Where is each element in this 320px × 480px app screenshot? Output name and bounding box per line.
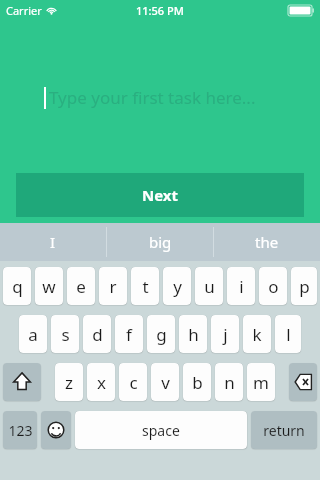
staticText: big — [149, 232, 172, 252]
button[interactable]: w — [35, 267, 63, 305]
button[interactable]: o — [259, 267, 287, 305]
button[interactable]: q — [3, 267, 31, 305]
button[interactable]: n — [215, 363, 243, 401]
staticText: q — [12, 275, 23, 298]
button[interactable]: g — [147, 315, 175, 353]
staticText: d — [92, 323, 103, 346]
button[interactable]: r — [99, 267, 127, 305]
staticText: c — [129, 371, 138, 394]
button[interactable]: t — [131, 267, 159, 305]
staticText: y — [173, 275, 182, 298]
staticText: t — [142, 275, 149, 298]
staticText: b — [192, 371, 203, 394]
staticText: space — [142, 421, 180, 440]
button[interactable]: m — [247, 363, 275, 401]
staticText: e — [76, 275, 86, 298]
staticText: Next — [142, 185, 179, 205]
staticText: return — [263, 421, 305, 440]
staticText: p — [299, 275, 310, 298]
button[interactable]: f — [115, 315, 143, 353]
button[interactable]: Type your first task here... — [44, 86, 256, 109]
staticText: w — [42, 275, 56, 298]
staticText: Carrier — [6, 3, 42, 18]
button[interactable]: p — [291, 267, 317, 305]
button[interactable]: Next — [16, 173, 304, 217]
staticText: 11:56 PM — [136, 3, 184, 18]
button[interactable]: I — [0, 223, 106, 261]
staticText: x — [97, 371, 106, 394]
button[interactable]: b — [183, 363, 211, 401]
staticText: I — [50, 232, 56, 252]
button[interactable]: k — [243, 315, 271, 353]
staticText: h — [188, 323, 199, 346]
button[interactable]: v — [151, 363, 179, 401]
button[interactable]: 123 — [3, 411, 37, 449]
staticText: o — [268, 275, 279, 298]
staticText: u — [204, 275, 215, 298]
staticText: l — [286, 323, 291, 346]
staticText: z — [65, 371, 73, 394]
staticText: v — [161, 371, 170, 394]
button[interactable]: s — [51, 315, 79, 353]
staticText: f — [126, 323, 132, 346]
staticText: r — [109, 275, 117, 298]
button[interactable]: d — [83, 315, 111, 353]
button[interactable]: return — [251, 411, 317, 449]
staticText: the — [255, 232, 279, 252]
button[interactable]: h — [179, 315, 207, 353]
button[interactable]: space — [75, 411, 247, 449]
button[interactable]: j — [211, 315, 239, 353]
staticText: k — [252, 323, 262, 346]
button[interactable]: y — [163, 267, 191, 305]
button[interactable]: the — [214, 223, 320, 261]
button[interactable]: big — [107, 223, 213, 261]
staticText: g — [156, 323, 167, 346]
staticText: s — [61, 323, 70, 346]
button[interactable]: e — [67, 267, 95, 305]
button[interactable]: i — [227, 267, 255, 305]
button[interactable]: l — [275, 315, 301, 353]
staticText: a — [28, 323, 38, 346]
staticText: j — [223, 323, 228, 346]
button[interactable]: x — [87, 363, 115, 401]
button[interactable]: Emoji — [41, 411, 71, 449]
staticText: i — [239, 275, 244, 298]
staticText: m — [253, 371, 269, 394]
button[interactable]: Shift — [3, 363, 41, 401]
button[interactable]: u — [195, 267, 223, 305]
button[interactable]: c — [119, 363, 147, 401]
button[interactable]: Delete — [289, 363, 317, 401]
button[interactable]: a — [19, 315, 47, 353]
staticText: n — [224, 371, 235, 394]
button[interactable]: z — [55, 363, 83, 401]
staticText: 123 — [8, 421, 33, 440]
staticText: Type your first task here... — [49, 86, 256, 109]
